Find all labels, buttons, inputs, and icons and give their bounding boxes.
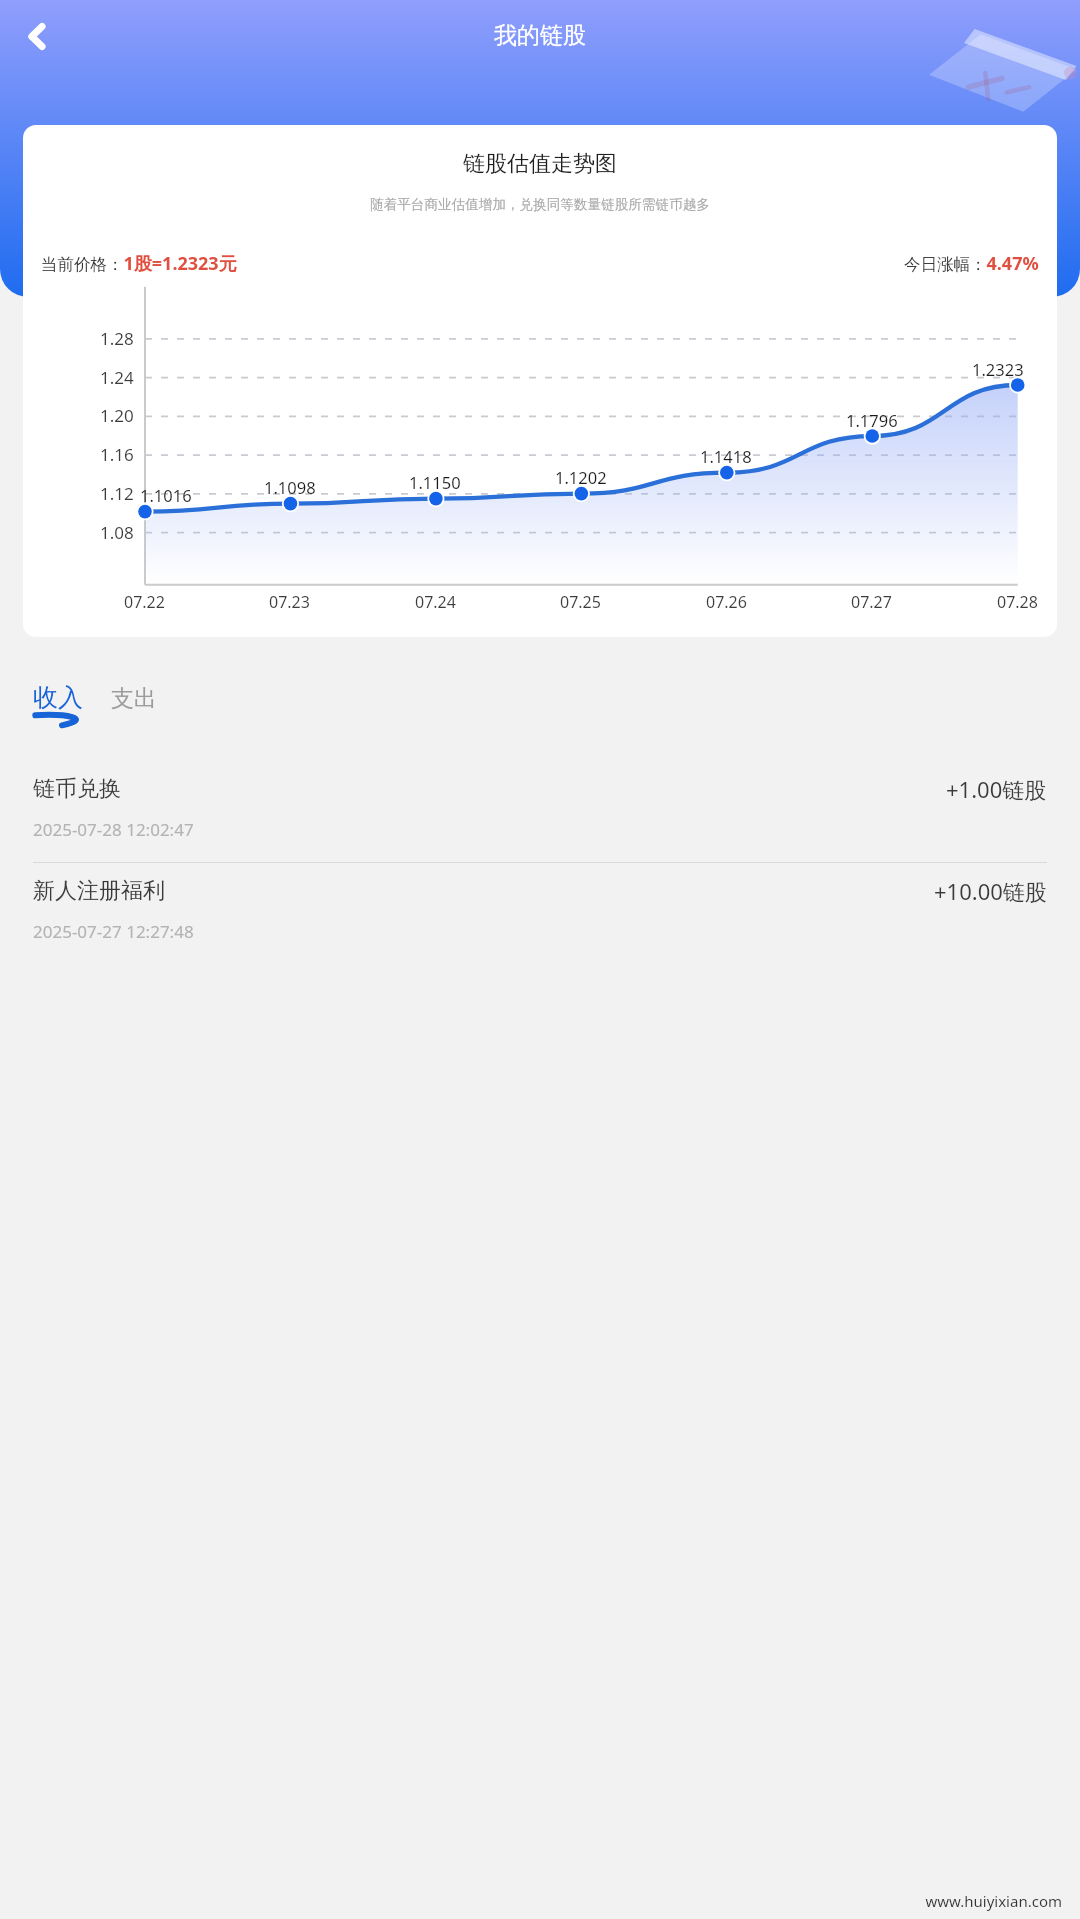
staticText: 随着平台商业估值增加，兑换同等数量链股所需链币越多	[33, 196, 1047, 213]
staticText: 1.28	[100, 327, 134, 350]
staticText: 07.26	[706, 591, 747, 613]
staticText: 1.1202	[555, 466, 607, 488]
staticText: 07.25	[560, 591, 601, 613]
button[interactable]: 链币兑换	[0, 761, 1080, 863]
staticText: 1.12	[100, 482, 134, 505]
staticText: 1.1150	[409, 471, 461, 493]
staticText: +10.00链股	[934, 876, 1047, 906]
staticText: 1.08	[100, 521, 134, 544]
staticText: 1.1016	[140, 484, 192, 506]
button[interactable]: 支出	[111, 684, 157, 727]
staticText: 1.20	[100, 404, 134, 427]
button[interactable]: 新人注册福利	[0, 863, 1080, 964]
staticText: 链股估值走势图	[23, 150, 1057, 178]
staticText: 07.28	[997, 591, 1038, 613]
staticText: 1.16	[100, 443, 134, 466]
staticText: 07.24	[415, 591, 456, 613]
staticText: 今日涨幅：4.47%	[904, 251, 1039, 276]
staticText: 当前价格：1股=1.2323元	[41, 251, 237, 276]
staticText: 07.23	[269, 591, 310, 613]
staticText: 链币兑换	[33, 775, 121, 803]
staticText: 2025-07-28 12:02:47	[33, 818, 194, 841]
button[interactable]: 收入	[33, 682, 91, 727]
staticText: 收入	[33, 682, 83, 713]
staticText: 新人注册福利	[33, 877, 165, 905]
button[interactable]: Back	[12, 11, 62, 61]
staticText: +1.00链股	[946, 774, 1047, 804]
staticText: www.huiyixian.com	[0, 1891, 1062, 1911]
staticText: 1.1418	[700, 445, 752, 467]
staticText: 支出	[111, 684, 157, 713]
staticText: 1.1796	[846, 409, 898, 431]
staticText: 1.2323	[972, 358, 1024, 380]
staticText: 07.27	[851, 591, 892, 613]
staticText: 我的链股	[494, 21, 586, 50]
staticText: 2025-07-27 12:27:48	[33, 920, 194, 943]
staticText: 07.22	[124, 591, 165, 613]
staticText: 1.24	[100, 366, 134, 389]
staticText: 1.1098	[264, 476, 316, 498]
